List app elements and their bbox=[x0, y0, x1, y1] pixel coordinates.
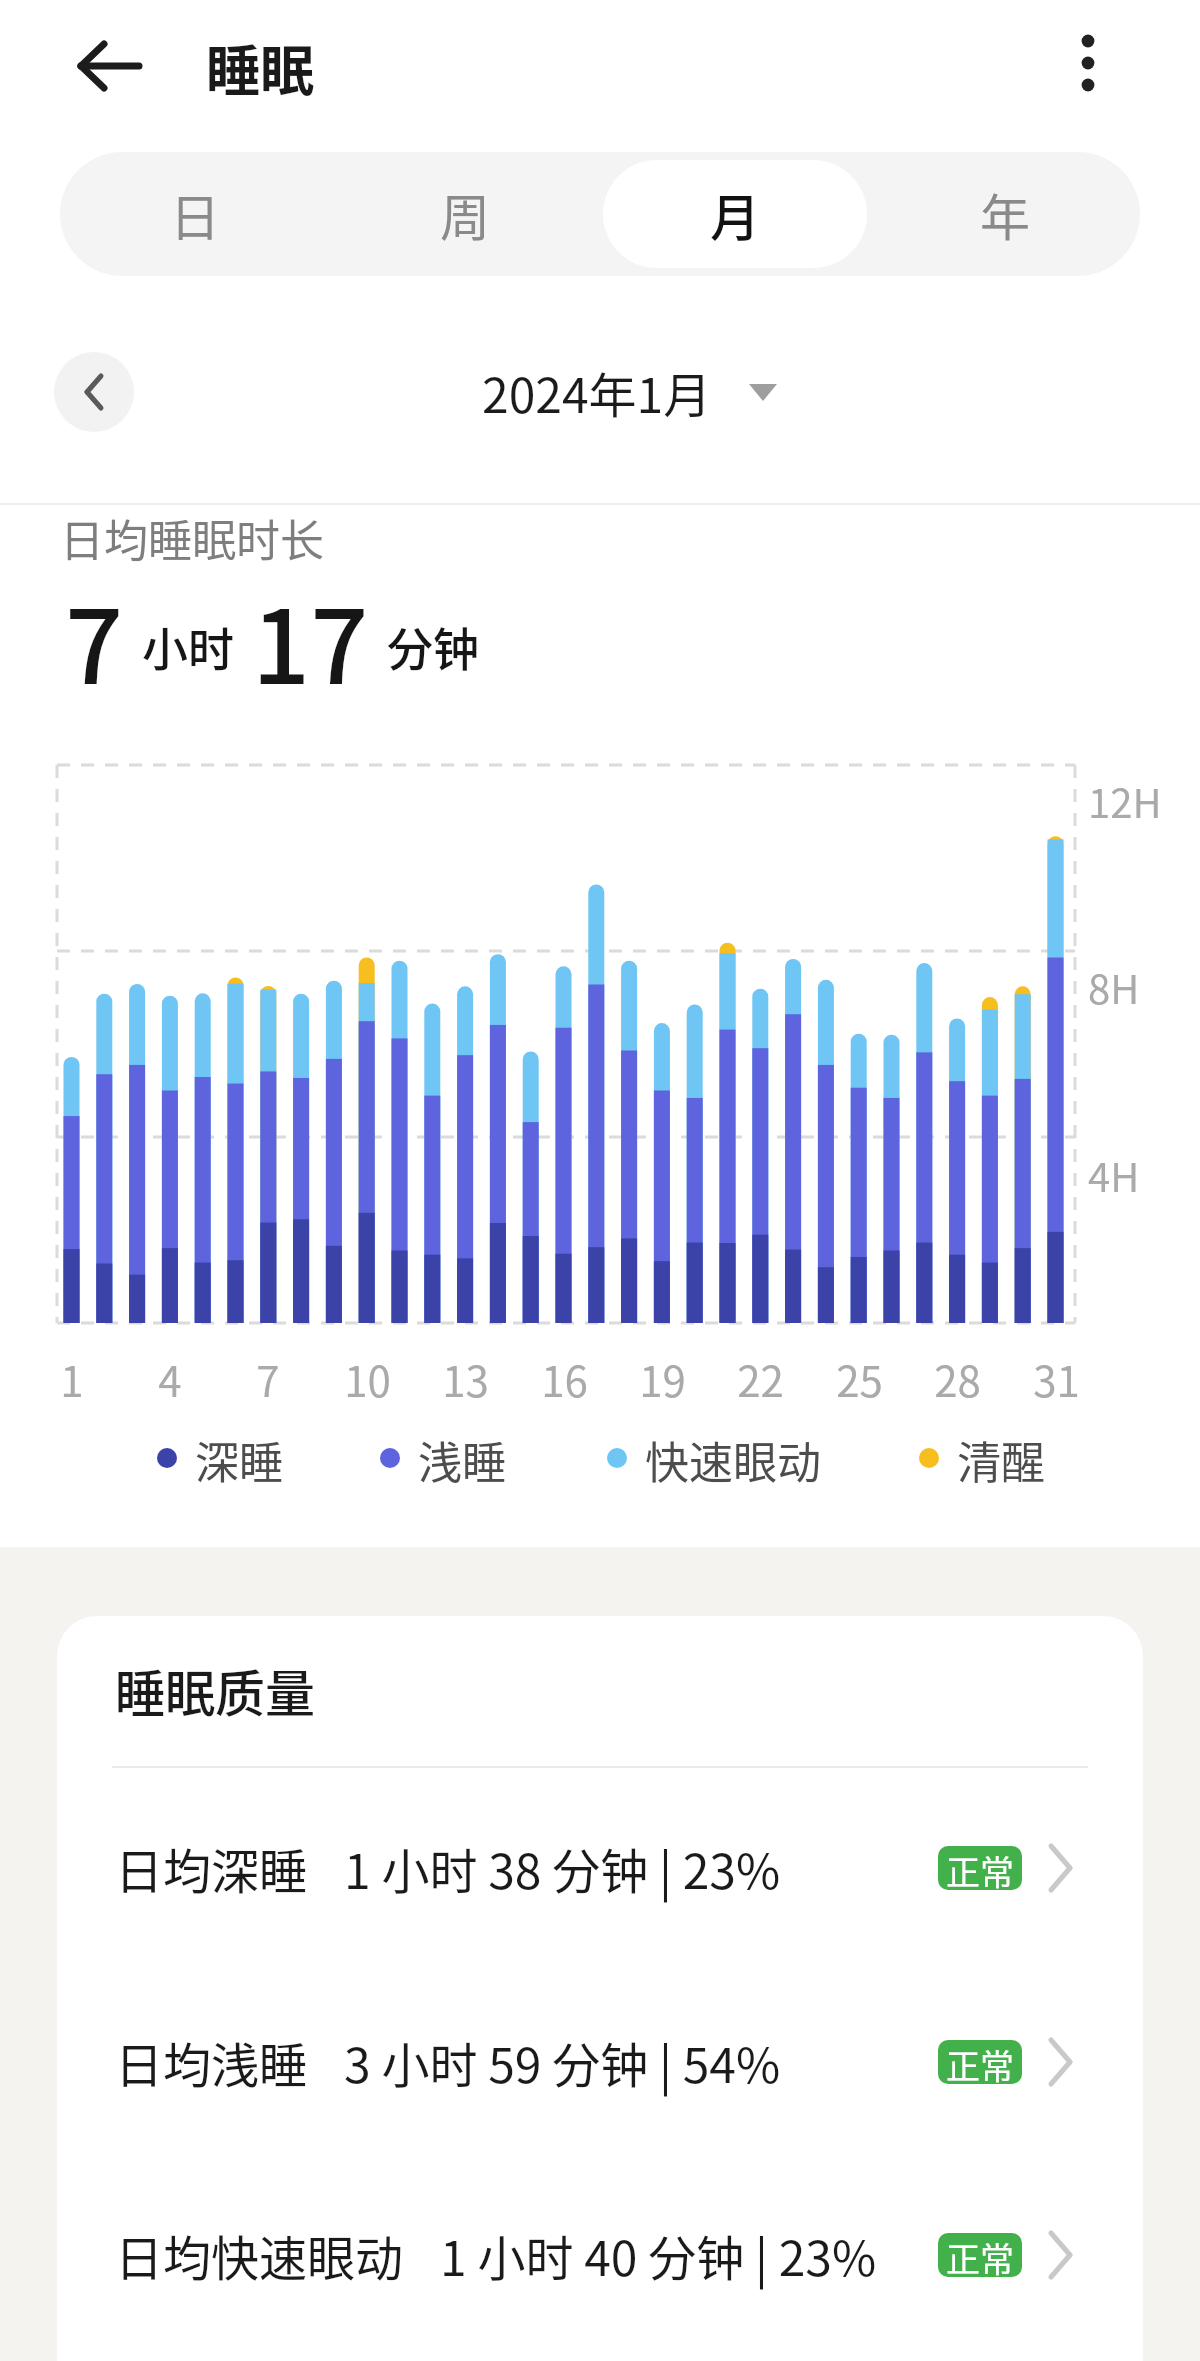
staticText: 睡眠质量 bbox=[115, 1654, 315, 1726]
staticText: 正常 bbox=[946, 1846, 1014, 1890]
staticText: 日 bbox=[170, 178, 220, 250]
button[interactable]: 日均深睡 bbox=[115, 1823, 1074, 1913]
button[interactable]: 日 bbox=[60, 152, 330, 276]
button[interactable]: 日均快速眼动 bbox=[115, 2210, 1074, 2300]
staticText: 12H bbox=[1088, 772, 1162, 830]
staticText: 日均快速眼动 bbox=[115, 2220, 404, 2290]
staticText: 4H bbox=[1088, 1146, 1140, 1204]
staticText: 8H bbox=[1088, 958, 1140, 1016]
staticText: 年 bbox=[980, 178, 1030, 250]
button[interactable]: 正常 bbox=[938, 2233, 1022, 2277]
staticText: 10 bbox=[344, 1348, 391, 1409]
staticText: 清醒 bbox=[957, 1428, 1045, 1492]
staticText: 日均浅睡 bbox=[115, 2027, 308, 2097]
staticText: 7 bbox=[256, 1348, 280, 1409]
button[interactable] bbox=[1050, 16, 1126, 116]
button[interactable]: 正常 bbox=[938, 2040, 1022, 2084]
button[interactable]: 2024年1月 bbox=[30, 352, 1200, 432]
staticText: 4 bbox=[158, 1348, 182, 1409]
staticText: 25 bbox=[836, 1348, 883, 1409]
staticText: 7 bbox=[65, 566, 124, 692]
staticText: 睡眠 bbox=[206, 28, 314, 106]
staticText: 小时 bbox=[142, 613, 234, 680]
staticText: 快速眼动 bbox=[645, 1428, 821, 1492]
button[interactable] bbox=[68, 24, 152, 108]
staticText: 3 小时 59 分钟 | 54% bbox=[344, 2027, 781, 2097]
staticText: 31 bbox=[1033, 1348, 1080, 1409]
staticText: 22 bbox=[737, 1348, 784, 1409]
staticText: 深睡 bbox=[195, 1428, 283, 1492]
staticText: 月 bbox=[710, 178, 760, 250]
staticText: 正常 bbox=[946, 2233, 1014, 2277]
staticText: 16 bbox=[541, 1348, 588, 1409]
button[interactable]: 正常 bbox=[938, 1846, 1022, 1890]
staticText: 浅睡 bbox=[418, 1428, 506, 1492]
staticText: 2024年1月 bbox=[482, 357, 712, 427]
staticText: 分钟 bbox=[387, 613, 479, 680]
staticText: 1 bbox=[60, 1348, 84, 1409]
staticText: 19 bbox=[639, 1348, 686, 1409]
staticText: 日均睡眠时长 bbox=[60, 506, 324, 570]
staticText: 28 bbox=[934, 1348, 981, 1409]
button[interactable]: 周 bbox=[330, 152, 600, 276]
staticText: 日均深睡 bbox=[115, 1833, 308, 1903]
staticText: 1 小时 38 分钟 | 23% bbox=[344, 1833, 781, 1903]
staticText: 周 bbox=[440, 178, 490, 250]
button[interactable]: 年 bbox=[870, 152, 1140, 276]
staticText: 1 小时 40 分钟 | 23% bbox=[440, 2220, 877, 2290]
button[interactable]: 日均浅睡 bbox=[115, 2017, 1074, 2107]
button[interactable] bbox=[54, 352, 134, 432]
staticText: 17 bbox=[252, 566, 369, 692]
staticText: 13 bbox=[442, 1348, 489, 1409]
button[interactable]: 月 bbox=[600, 152, 870, 276]
staticText: 正常 bbox=[946, 2040, 1014, 2084]
